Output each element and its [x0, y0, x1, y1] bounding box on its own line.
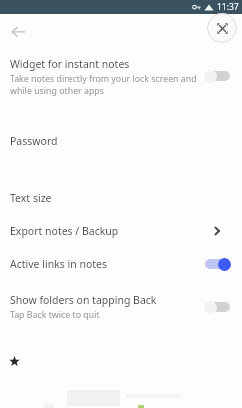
button[interactable]: Rate app	[0, 348, 242, 374]
button[interactable]: Toggle off	[204, 69, 231, 83]
button[interactable]: Export notes / Backup	[0, 217, 242, 245]
button[interactable]: Widget for instant notes	[0, 54, 242, 98]
button[interactable]: Open	[207, 221, 227, 241]
staticText: Text size	[10, 191, 52, 205]
button[interactable]: Show folders on tapping Back	[0, 285, 242, 329]
staticText: Password	[10, 134, 58, 148]
button[interactable]: Text size	[0, 184, 242, 212]
staticText: Active links in notes	[10, 257, 108, 271]
staticText: Show folders on tapping Back	[10, 293, 157, 307]
staticText: 11:37	[217, 1, 239, 13]
button[interactable]: Toggle off	[204, 300, 231, 314]
staticText: Export notes / Backup	[10, 224, 119, 238]
button[interactable]: Expand	[207, 13, 237, 43]
staticText: Widget for instant notes	[10, 57, 130, 71]
button[interactable]: Back	[5, 18, 31, 44]
staticText: Take notes directly from your lock scree…	[10, 73, 197, 96]
button[interactable]: Password	[0, 127, 242, 155]
button[interactable]: Toggle on	[204, 257, 231, 271]
staticText: Tap Back twice to quit	[10, 309, 100, 321]
button[interactable]: Active links in notes	[0, 250, 242, 278]
